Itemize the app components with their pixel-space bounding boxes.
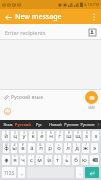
button[interactable]: ! bbox=[54, 155, 61, 165]
staticText: 1 bbox=[5, 131, 7, 135]
staticText: Русский bbox=[15, 122, 31, 127]
button[interactable]: 4 bbox=[29, 131, 36, 141]
button[interactable]: , bbox=[18, 167, 25, 178]
button[interactable]: Emoji bbox=[2, 106, 12, 116]
button[interactable]: . bbox=[76, 167, 83, 178]
staticText: _ bbox=[31, 143, 33, 147]
staticText: ( bbox=[67, 143, 68, 147]
staticText: л bbox=[66, 144, 70, 152]
button[interactable]: ' bbox=[28, 155, 34, 165]
staticText: х bbox=[94, 132, 98, 140]
button[interactable]: ю bbox=[81, 155, 88, 165]
staticText: 7 bbox=[59, 131, 61, 135]
staticText: и bbox=[47, 156, 51, 164]
staticText: м bbox=[37, 156, 42, 164]
button[interactable]: 1 bbox=[2, 131, 9, 141]
button[interactable]: ( bbox=[64, 143, 71, 153]
button[interactable]: Add contact bbox=[87, 27, 98, 38]
staticText: ' bbox=[31, 155, 32, 159]
button[interactable]: Рус bbox=[31, 120, 47, 129]
staticText: , bbox=[21, 169, 23, 177]
button[interactable]: _ bbox=[28, 143, 35, 153]
staticText: Язык bbox=[3, 122, 13, 127]
staticText: з bbox=[85, 132, 88, 140]
staticText: - bbox=[49, 143, 51, 147]
button[interactable]: ; bbox=[45, 155, 52, 165]
staticText: о bbox=[57, 144, 61, 152]
staticText: ц bbox=[13, 132, 17, 140]
button[interactable]: More suggestions bbox=[95, 120, 101, 129]
staticText: Enter recipients bbox=[5, 29, 46, 36]
button[interactable]: 8 bbox=[65, 131, 72, 141]
button[interactable]: Новый bbox=[47, 120, 63, 129]
staticText: щ bbox=[75, 132, 81, 140]
button[interactable]: 5 bbox=[38, 131, 45, 141]
staticText: у bbox=[22, 132, 26, 140]
button[interactable]: 0 bbox=[83, 131, 90, 141]
staticText: 4 bbox=[32, 131, 34, 135]
button[interactable]: 7 bbox=[56, 131, 63, 141]
staticText: ₽ bbox=[22, 143, 24, 147]
button[interactable]: * bbox=[12, 155, 18, 165]
button[interactable]: 9 bbox=[74, 131, 81, 141]
staticText: New message bbox=[15, 12, 62, 22]
button[interactable]: ₽ bbox=[19, 143, 26, 153]
button[interactable]: Send bbox=[85, 91, 98, 104]
staticText: 0 bbox=[86, 131, 88, 135]
button[interactable]: ? bbox=[63, 155, 70, 165]
button[interactable]: Русское bbox=[79, 120, 95, 129]
staticText: т bbox=[56, 156, 59, 164]
button[interactable]: Shift bbox=[2, 155, 10, 165]
staticText: ?123 bbox=[4, 170, 14, 176]
staticText: 2 bbox=[14, 131, 16, 135]
button[interactable]: Русский bbox=[15, 120, 31, 129]
staticText: Русское bbox=[80, 122, 95, 127]
button[interactable]: Enter bbox=[85, 167, 99, 178]
staticText: д bbox=[75, 144, 79, 152]
staticText: 6 bbox=[50, 131, 52, 135]
staticText: ? bbox=[66, 155, 68, 159]
button[interactable]: Attach bbox=[1, 92, 11, 102]
staticText: г bbox=[58, 132, 61, 140]
staticText: 9 bbox=[77, 131, 79, 135]
button[interactable]: 6 bbox=[47, 131, 54, 141]
button[interactable]: " bbox=[20, 155, 26, 165]
staticText: Русский язык bbox=[11, 94, 44, 101]
staticText: Рус bbox=[36, 122, 42, 127]
button[interactable]: Back bbox=[2, 11, 14, 23]
button[interactable]: Backspace bbox=[90, 155, 99, 165]
button[interactable]: 3 bbox=[20, 131, 27, 141]
button[interactable]: @ bbox=[3, 143, 9, 153]
staticText: н bbox=[49, 132, 53, 140]
button[interactable]: + bbox=[55, 143, 62, 153]
button[interactable]: ?123 bbox=[2, 167, 16, 178]
staticText: с bbox=[30, 156, 33, 164]
button[interactable]: & bbox=[37, 143, 44, 153]
staticText: б bbox=[74, 156, 78, 164]
button[interactable]: - bbox=[46, 143, 53, 153]
button[interactable]: More options bbox=[88, 11, 100, 23]
button[interactable]: # bbox=[11, 143, 17, 153]
staticText: SMS bbox=[88, 105, 96, 110]
button[interactable]: х bbox=[92, 131, 99, 141]
button[interactable]: ) bbox=[73, 143, 80, 153]
staticText: ж bbox=[83, 144, 88, 152]
button[interactable]: 2 bbox=[11, 131, 18, 141]
button[interactable]: э bbox=[91, 143, 98, 153]
button[interactable]: Язык bbox=[0, 120, 15, 129]
staticText: р bbox=[48, 144, 52, 152]
button[interactable]: Enter recipients bbox=[0, 24, 101, 40]
staticText: ч bbox=[21, 156, 25, 164]
staticText: ф bbox=[4, 144, 9, 152]
staticText: ) bbox=[76, 143, 77, 147]
staticText: Русские bbox=[64, 122, 79, 127]
button[interactable]: : bbox=[36, 155, 43, 165]
staticText: е bbox=[40, 132, 44, 140]
button[interactable]: б bbox=[72, 155, 79, 165]
staticText: 8 bbox=[68, 131, 70, 135]
button[interactable]: Русские bbox=[63, 120, 79, 129]
staticText: * bbox=[14, 155, 16, 159]
button[interactable]: / bbox=[82, 143, 89, 153]
staticText: ю bbox=[82, 156, 87, 164]
